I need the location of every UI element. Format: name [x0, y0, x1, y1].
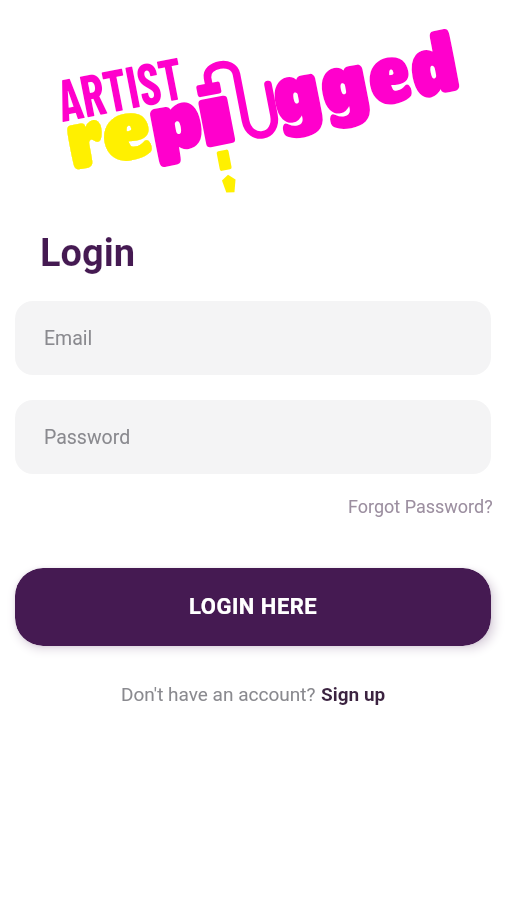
button[interactable]: Sign up: [321, 683, 386, 705]
button[interactable]: Forgot Password?: [348, 496, 493, 517]
button[interactable]: Password: [15, 400, 491, 474]
staticText: Forgot Password?: [348, 496, 493, 517]
staticText: LOGIN HERE: [189, 594, 318, 620]
staticText: Email: [44, 327, 93, 350]
button[interactable]: LOGIN HERE: [15, 568, 491, 646]
button[interactable]: Email: [15, 301, 491, 375]
staticText: Login: [40, 231, 136, 276]
staticText: Password: [44, 426, 131, 449]
staticText: Sign up: [321, 683, 386, 705]
staticText: Don't have an account?: [121, 683, 321, 705]
